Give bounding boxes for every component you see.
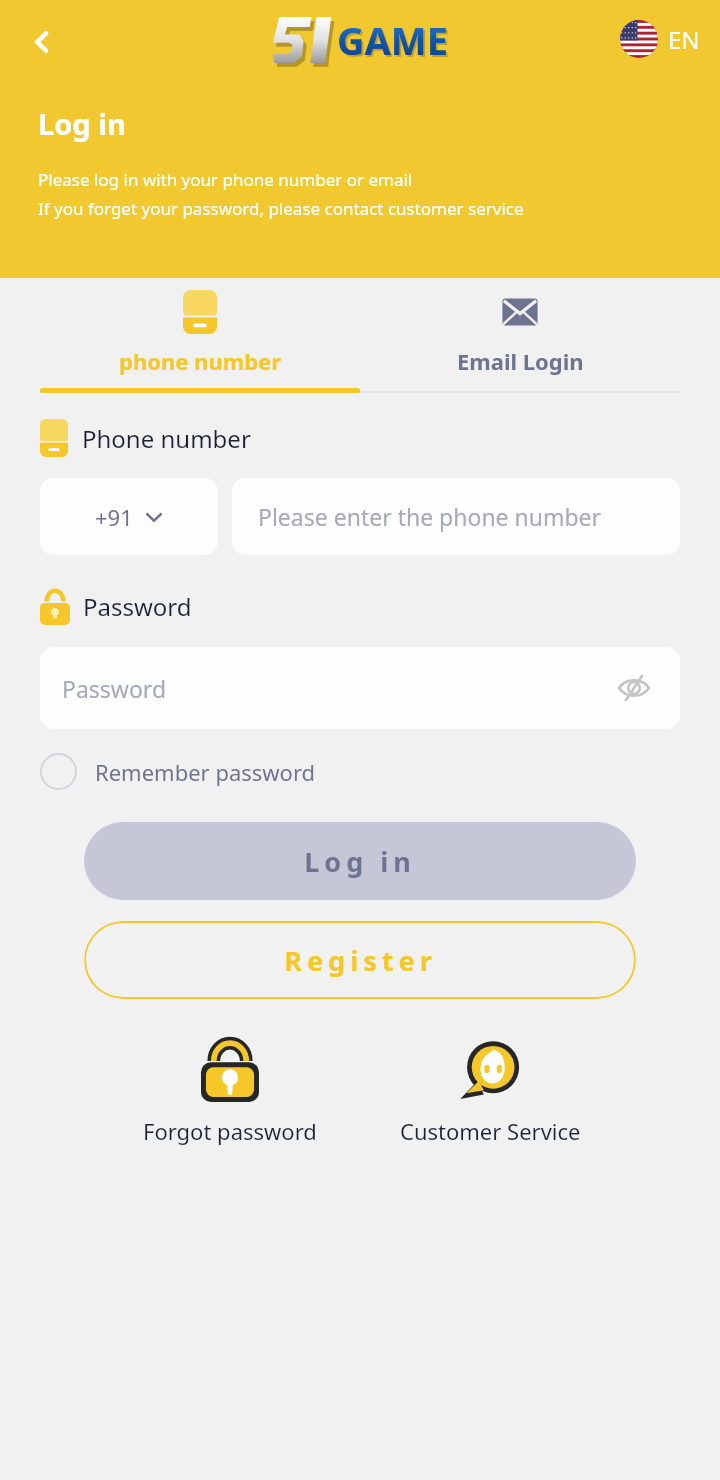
staticText: GAME <box>339 16 450 68</box>
staticText: phone number <box>119 346 282 376</box>
button[interactable]: Register <box>84 921 636 999</box>
button[interactable]: Customer Service <box>360 1040 620 1146</box>
button[interactable]: Back <box>18 18 66 66</box>
staticText: GAME <box>337 14 448 66</box>
button[interactable]: Forgot password <box>100 1040 360 1146</box>
button[interactable]: EN <box>620 20 700 58</box>
staticText: Register <box>284 942 437 979</box>
button[interactable]: Show password <box>612 666 656 710</box>
button[interactable]: +91 <box>40 478 218 555</box>
button[interactable]: Email Login <box>360 278 680 388</box>
staticText: Log in <box>38 104 126 143</box>
button[interactable]: Please enter the phone number <box>232 478 680 555</box>
staticText: Customer Service <box>400 1116 581 1146</box>
staticText: Email Login <box>457 346 584 376</box>
button[interactable]: Remember password <box>40 753 316 790</box>
staticText: Forgot password <box>143 1116 317 1146</box>
staticText: Log in <box>304 843 416 880</box>
staticText: Remember password <box>95 757 316 787</box>
staticText: Please enter the phone number <box>258 501 602 532</box>
staticText: EN <box>668 23 700 56</box>
staticText: Password <box>62 673 167 704</box>
button[interactable]: Password <box>40 647 680 729</box>
button[interactable]: phone number <box>40 278 360 388</box>
staticText: +91 <box>95 502 133 532</box>
staticText: Phone number <box>82 422 251 455</box>
staticText: Please log in with your phone number or … <box>38 168 413 191</box>
button[interactable]: Log in <box>84 822 636 900</box>
staticText: Password <box>83 590 192 623</box>
staticText: If you forget your password, please cont… <box>38 197 524 220</box>
